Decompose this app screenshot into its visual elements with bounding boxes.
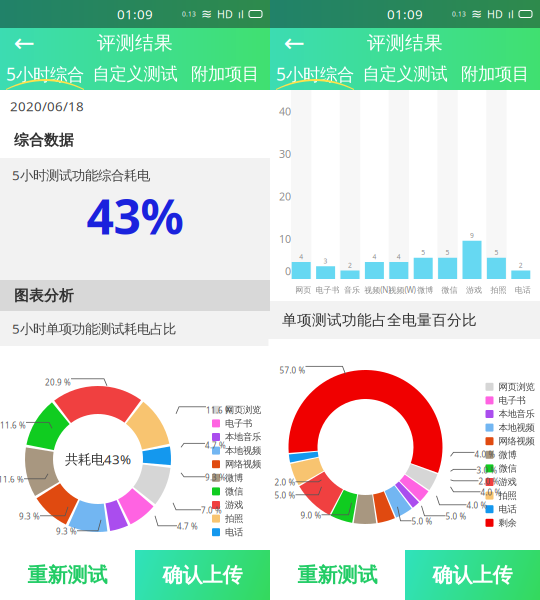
- staticText: 40: [279, 104, 291, 118]
- staticText: 评测结果: [97, 31, 173, 54]
- staticText: 视频(N): [364, 285, 390, 295]
- staticText: 2: [519, 261, 523, 269]
- button[interactable]: Back: [6, 29, 42, 57]
- staticText: 网页: [295, 285, 311, 295]
- staticText: 01:09: [387, 5, 423, 23]
- button[interactable]: 5小时综合: [270, 58, 360, 90]
- staticText: 4: [397, 252, 401, 261]
- staticText: 5小时综合: [6, 62, 84, 85]
- staticText: 4.0 %: [480, 487, 501, 498]
- staticText: ≋: [201, 6, 212, 21]
- staticText: ←: [13, 29, 34, 57]
- staticText: 2.0 %: [274, 477, 295, 488]
- button[interactable]: 自定义测试: [360, 58, 450, 90]
- staticText: 20: [279, 189, 291, 203]
- button[interactable]: 确认上传: [405, 550, 540, 600]
- staticText: 2020/06/18: [10, 97, 84, 115]
- staticText: 重新测试: [27, 563, 107, 587]
- staticText: 音乐: [344, 285, 360, 295]
- staticText: 游戏: [466, 285, 482, 295]
- staticText: 确认上传: [432, 563, 512, 587]
- staticText: 2: [348, 261, 352, 269]
- staticText: 网页浏览: [225, 404, 261, 416]
- button[interactable]: 附加项目: [180, 58, 270, 90]
- button[interactable]: 重新测试: [270, 550, 405, 600]
- staticText: 微信: [498, 463, 516, 474]
- staticText: 自定义测试: [92, 63, 177, 85]
- staticText: 01:09: [117, 5, 153, 23]
- button[interactable]: 确认上传: [135, 550, 270, 600]
- staticText: 11.6 %: [0, 420, 26, 431]
- staticText: 拍照: [498, 490, 516, 501]
- staticText: 图表分析: [14, 286, 74, 304]
- staticText: 网络视频: [225, 458, 261, 470]
- staticText: 9.0 %: [300, 510, 321, 521]
- staticText: 5: [494, 248, 498, 257]
- staticText: 9.3 %: [19, 511, 40, 522]
- staticText: 0.13: [452, 10, 466, 18]
- staticText: 5.0 %: [445, 511, 466, 522]
- staticText: 网页浏览: [498, 381, 534, 393]
- staticText: ←: [283, 29, 304, 57]
- staticText: 0.13: [182, 10, 196, 18]
- staticText: 附加项目: [191, 63, 259, 85]
- staticText: 微博: [417, 285, 433, 295]
- staticText: 3: [324, 256, 328, 265]
- staticText: 拍照: [490, 285, 506, 295]
- staticText: 9.3 %: [56, 526, 77, 537]
- staticText: 5小时单项功能测试耗电占比: [12, 320, 176, 337]
- staticText: 4.0 %: [466, 500, 487, 511]
- staticText: HD: [217, 7, 233, 21]
- staticText: ıl: [508, 7, 514, 21]
- staticText: 5小时测试功能综合耗电: [12, 166, 150, 184]
- staticText: 电子书: [498, 395, 525, 406]
- staticText: 电话: [225, 526, 243, 538]
- staticText: 确认上传: [162, 563, 242, 587]
- button[interactable]: 重新测试: [0, 550, 135, 600]
- staticText: 5.0 %: [411, 516, 432, 527]
- staticText: 本地音乐: [225, 431, 261, 443]
- staticText: 0: [285, 264, 291, 278]
- staticText: 单项测试功能占全电量百分比: [282, 311, 477, 329]
- staticText: 电子书: [225, 418, 252, 429]
- staticText: 9.3 %: [205, 472, 226, 483]
- staticText: 共耗电43%: [65, 450, 131, 468]
- staticText: 网络视频: [498, 435, 534, 447]
- staticText: 5: [421, 248, 425, 257]
- staticText: ≋: [471, 6, 482, 21]
- button[interactable]: 附加项目: [450, 58, 540, 90]
- staticText: 拍照: [225, 513, 243, 524]
- staticText: 视频(W): [389, 285, 416, 295]
- staticText: 4.7 %: [177, 521, 198, 532]
- staticText: 游戏: [225, 499, 243, 511]
- staticText: 附加项目: [461, 63, 529, 85]
- staticText: 微信: [442, 285, 458, 295]
- staticText: 30: [279, 147, 291, 161]
- staticText: 43%: [86, 184, 183, 248]
- staticText: 2.0 %: [478, 476, 499, 487]
- button[interactable]: 5小时综合: [0, 58, 90, 90]
- staticText: 20.9 %: [45, 377, 71, 388]
- staticText: 5.0 %: [274, 490, 295, 501]
- staticText: 7.0 %: [201, 505, 222, 516]
- staticText: 4.0 %: [474, 449, 495, 460]
- staticText: 重新测试: [297, 563, 377, 587]
- staticText: 微信: [225, 486, 243, 497]
- staticText: 本地视频: [498, 422, 534, 433]
- button[interactable]: 自定义测试: [90, 58, 180, 90]
- staticText: 剩余: [498, 517, 516, 529]
- staticText: 本地音乐: [498, 408, 534, 420]
- staticText: 57.0 %: [279, 365, 305, 376]
- staticText: 9: [470, 231, 474, 240]
- staticText: 10: [279, 232, 291, 246]
- staticText: 3.0 %: [476, 465, 497, 476]
- staticText: 4: [372, 252, 376, 261]
- staticText: 微博: [498, 449, 516, 461]
- staticText: 综合数据: [14, 131, 74, 149]
- staticText: 本地视频: [225, 445, 261, 456]
- staticText: HD: [487, 7, 503, 21]
- staticText: 微博: [225, 472, 243, 484]
- button[interactable]: Back: [276, 29, 312, 57]
- staticText: ıl: [238, 7, 244, 21]
- staticText: 4.7 %: [205, 440, 226, 451]
